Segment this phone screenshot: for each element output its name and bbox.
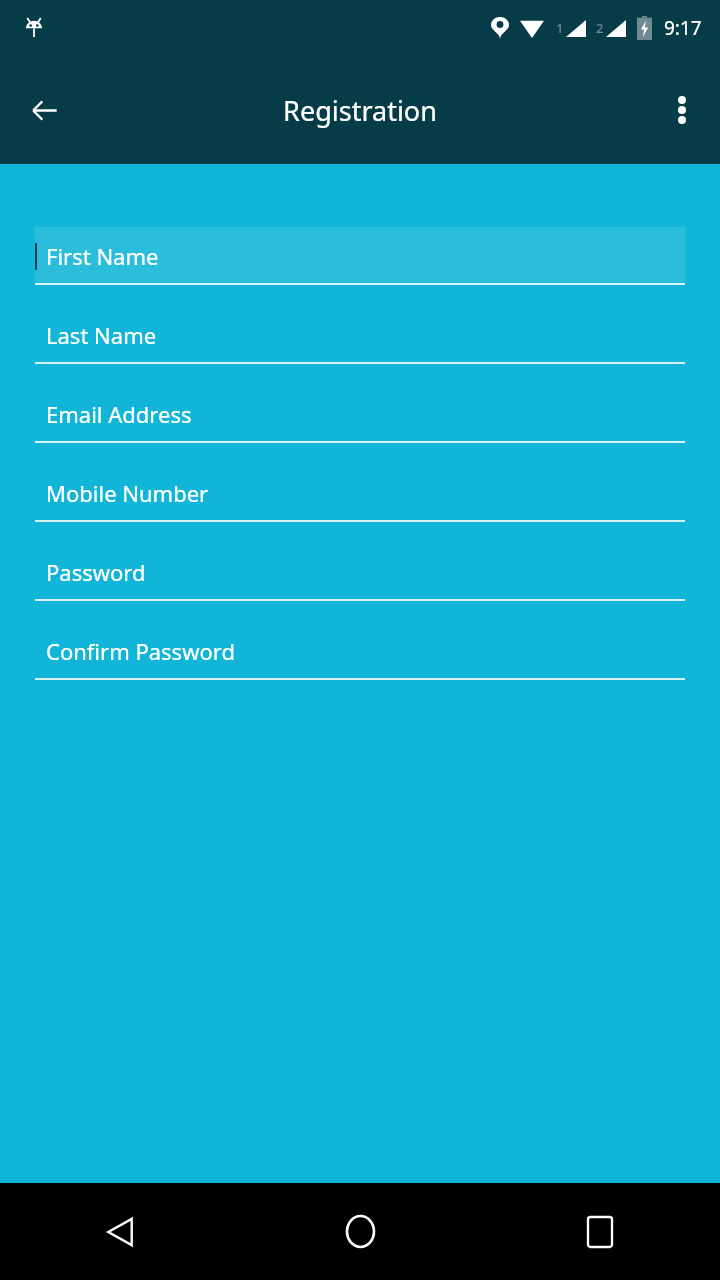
button[interactable]: Back — [12, 78, 76, 142]
staticText: Last Name — [46, 320, 157, 350]
staticText: Email Address — [46, 399, 192, 429]
button[interactable]: Password — [35, 543, 685, 601]
staticText: Registration — [283, 92, 437, 129]
staticText: Password — [46, 557, 146, 587]
staticText: 2 — [596, 19, 604, 37]
button[interactable]: Confirm Password — [35, 622, 685, 680]
button[interactable]: More options — [652, 80, 712, 140]
staticText: 9:17 — [664, 15, 702, 41]
button[interactable]: Last Name — [35, 306, 685, 364]
staticText: Confirm Password — [46, 636, 235, 666]
button[interactable]: Back — [0, 1183, 240, 1280]
button[interactable]: Home — [240, 1183, 480, 1280]
button[interactable]: First Name — [35, 227, 685, 285]
button[interactable]: Email Address — [35, 385, 685, 443]
staticText: First Name — [46, 241, 159, 271]
button[interactable]: Mobile Number — [35, 464, 685, 522]
staticText: 1 — [556, 19, 564, 37]
staticText: Mobile Number — [46, 478, 209, 508]
button[interactable]: Recent apps — [480, 1183, 720, 1280]
